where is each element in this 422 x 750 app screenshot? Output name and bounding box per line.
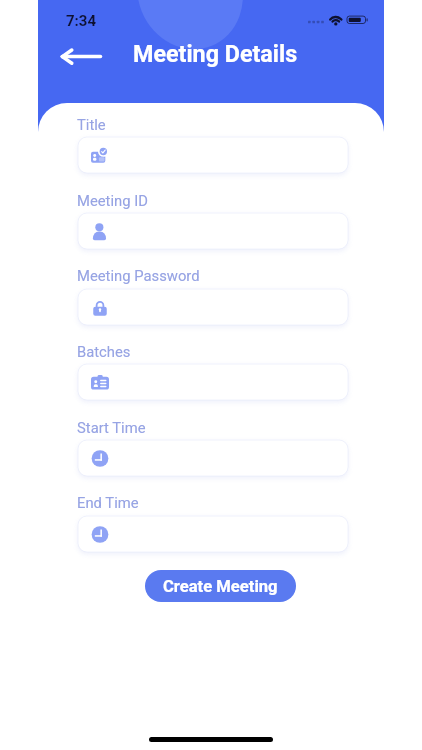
button[interactable]: Back [51, 39, 95, 74]
button[interactable] [78, 213, 348, 249]
button[interactable] [78, 364, 348, 400]
staticText: Meeting Details [133, 40, 298, 67]
staticText: Meeting Password [77, 267, 200, 284]
button[interactable] [78, 516, 348, 552]
staticText: Batches [77, 343, 131, 360]
staticText: Create Meeting [163, 577, 278, 596]
button[interactable] [78, 440, 348, 476]
button[interactable] [78, 289, 348, 325]
staticText: 7:34 [66, 12, 97, 30]
staticText: Title [77, 116, 106, 133]
staticText: Start Time [77, 419, 146, 436]
staticText: End Time [77, 494, 139, 511]
button[interactable] [78, 137, 348, 173]
button[interactable]: Create Meeting [145, 570, 296, 602]
staticText: Meeting ID [77, 192, 148, 209]
